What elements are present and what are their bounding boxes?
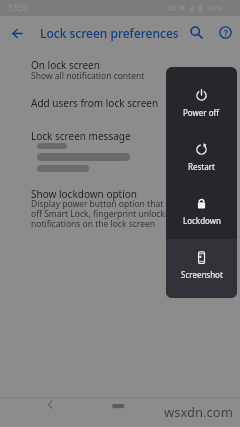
staticText: Restart: [188, 161, 215, 172]
button[interactable]: [0, 182, 240, 230]
staticText: wsxdn.com: [164, 403, 233, 421]
button[interactable]: ?: [215, 22, 236, 43]
button[interactable]: Screenshot: [166, 241, 237, 295]
button[interactable]: [104, 397, 132, 425]
button[interactable]: [0, 122, 240, 180]
button[interactable]: [0, 52, 240, 92]
staticText: 64%: [208, 3, 223, 13]
button[interactable]: Power off: [166, 79, 237, 133]
staticText: notifications on the lock screen: [31, 218, 155, 230]
button[interactable]: Lockdown: [166, 187, 237, 241]
staticText: Lock screen preferences: [40, 25, 179, 41]
staticText: Display power button option that turns: [31, 198, 187, 210]
staticText: Lock screen message: [31, 129, 131, 143]
button[interactable]: [6, 22, 28, 44]
staticText: off Smart Lock, fingerprint unlocking, a…: [31, 208, 198, 220]
staticText: Show lockdown option: [31, 187, 138, 201]
staticText: Show all notification content: [31, 70, 145, 82]
button[interactable]: [0, 92, 240, 116]
staticText: 13:36: [8, 2, 29, 13]
button[interactable]: [186, 22, 207, 43]
staticText: Lockdown: [183, 215, 221, 226]
button[interactable]: [36, 397, 64, 425]
staticText: ?: [224, 27, 228, 38]
staticText: On lock screen: [31, 58, 100, 72]
staticText: Screenshot: [181, 269, 223, 280]
staticText: Power off: [183, 107, 220, 118]
staticText: Add users from lock screen: [31, 96, 159, 110]
button[interactable]: Restart: [166, 133, 237, 187]
